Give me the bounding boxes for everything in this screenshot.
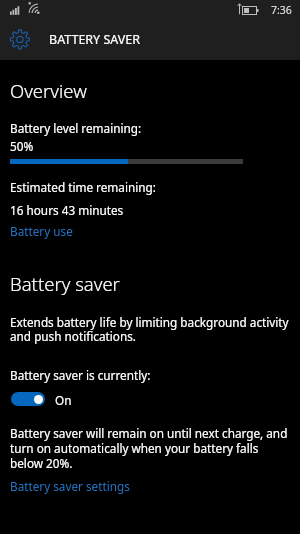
- staticText: Estimated time remaining:: [10, 179, 156, 195]
- button[interactable]: [11, 392, 45, 406]
- staticText: BATTERY SAVER: [49, 31, 141, 48]
- button[interactable]: BATTERY SAVER: [49, 31, 141, 48]
- staticText: 16 hours 43 minutes: [10, 202, 124, 218]
- staticText: 50%: [10, 138, 34, 154]
- button[interactable]: Battery saver settings: [10, 478, 130, 494]
- staticText: Battery saver will remain on until next …: [10, 425, 288, 471]
- staticText: Extends battery life by limiting backgro…: [10, 314, 289, 345]
- button[interactable]: Battery use: [10, 223, 73, 239]
- staticText: Battery saver is currently:: [10, 367, 151, 383]
- staticText: Battery saver: [10, 271, 120, 296]
- staticText: 7:36: [271, 3, 292, 17]
- staticText: Battery level remaining:: [10, 120, 142, 136]
- staticText: On: [55, 392, 72, 408]
- button[interactable]: Settings: [6, 25, 35, 54]
- staticText: Overview: [10, 78, 87, 103]
